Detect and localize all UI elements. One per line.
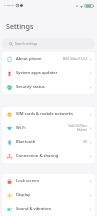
staticText: 11:09 PM	[4, 4, 14, 7]
staticText: Wi-Fi	[16, 125, 26, 131]
button[interactable]: About phone	[2, 52, 95, 66]
staticText: Connection & sharing	[16, 153, 59, 159]
button[interactable]: Wi-Fi	[2, 121, 95, 135]
button[interactable]: Search settings	[2, 38, 95, 49]
staticText: Lock screen	[16, 178, 39, 184]
button[interactable]: Lock screen	[2, 174, 95, 188]
button[interactable]: Connection & sharing	[2, 149, 95, 163]
staticText: Search settings	[15, 42, 38, 46]
button[interactable]: System apps updater	[2, 66, 95, 80]
staticText: About phone	[16, 56, 42, 62]
button[interactable]: Security status	[2, 80, 95, 94]
staticText: Sound & vibration	[16, 206, 52, 212]
staticText: SIM cards & mobile networks	[16, 111, 74, 117]
button[interactable]: Sound & vibration	[2, 202, 95, 216]
button[interactable]: Display	[2, 188, 95, 202]
button[interactable]: SIM cards & mobile networks	[2, 107, 95, 121]
staticText: System apps updater	[16, 70, 58, 76]
staticText: MIUI Global 12.5.4	[62, 57, 87, 61]
staticText: Bluetooth	[16, 139, 36, 145]
staticText: Off	[82, 140, 87, 144]
staticText: Settings	[6, 21, 34, 31]
staticText: Dabi 5G (Fiber Edition)	[68, 124, 87, 132]
button[interactable]: Bluetooth	[2, 135, 95, 149]
staticText: Display	[16, 192, 31, 198]
staticText: Security status	[16, 84, 45, 90]
